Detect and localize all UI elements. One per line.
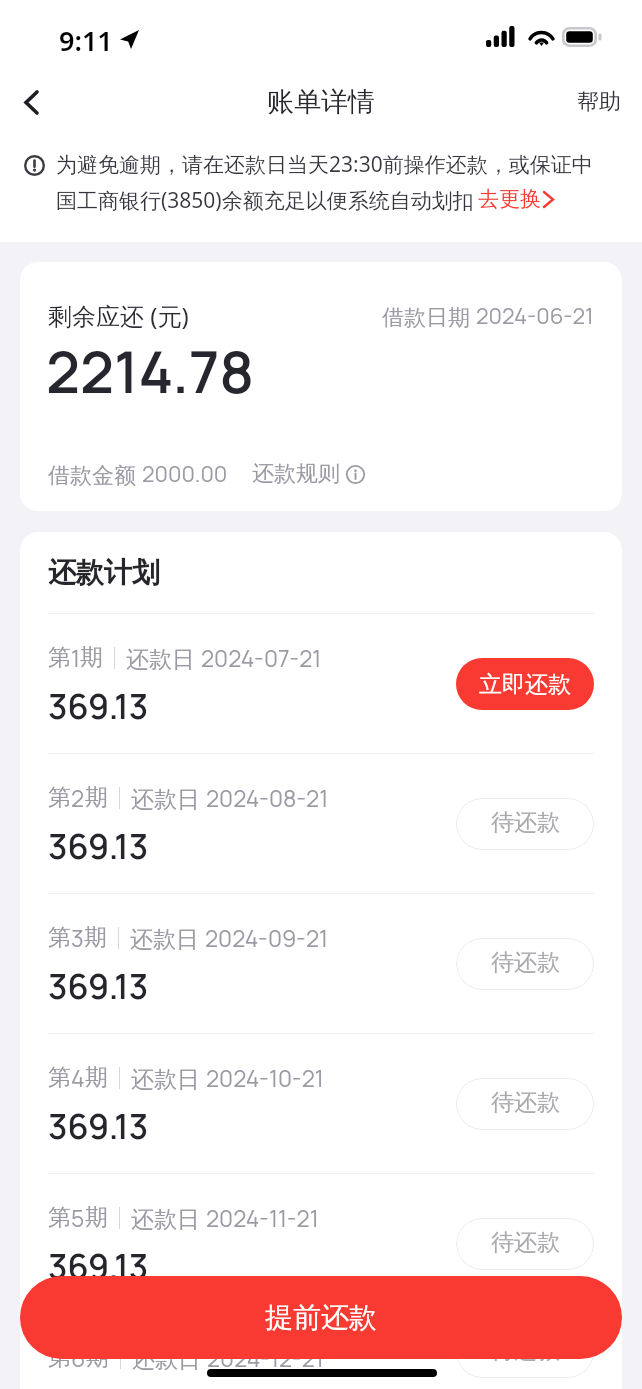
staticText: 369.13: [48, 823, 149, 869]
staticText: 立即还款: [479, 670, 571, 699]
staticText: 1: [71, 642, 80, 673]
staticText: 待还款: [491, 808, 560, 837]
staticText: 2024-12-21: [207, 1342, 324, 1373]
staticText: 待还款: [491, 948, 560, 977]
staticText: 期: [85, 783, 108, 812]
button[interactable]: 立即还款: [456, 658, 594, 710]
staticText: 期: [86, 1343, 109, 1372]
staticText: 待还款: [491, 1336, 560, 1365]
staticText: 还款日: [131, 782, 206, 813]
staticText: 2024-11-21: [206, 1202, 319, 1233]
staticText: 2024-06-21: [476, 301, 594, 331]
button[interactable]: 待还款: [456, 1078, 594, 1130]
staticText: 369.13: [48, 963, 149, 1009]
staticText: 去更换: [478, 186, 541, 212]
staticText: 还款日: [132, 1342, 207, 1373]
staticText: 6: [71, 1342, 86, 1373]
button[interactable]: 待还款: [456, 938, 594, 990]
button[interactable]: 待还款: [456, 798, 594, 850]
staticText: 369.13: [48, 1243, 149, 1289]
button[interactable]: 还款规则: [252, 460, 365, 488]
staticText: 第: [48, 1203, 71, 1232]
staticText: 5: [71, 1202, 85, 1233]
staticText: 2214.78: [46, 331, 255, 410]
staticText: 2000.00: [142, 459, 228, 489]
staticText: 为避免逾期，请在还款日当天23:30前操作还款，或保证中: [56, 150, 593, 179]
button[interactable]: 去更换: [478, 186, 553, 212]
staticText: 9:11: [59, 22, 113, 59]
staticText: 369.13: [48, 1103, 149, 1149]
staticText: 待还款: [491, 1228, 560, 1257]
staticText: 剩余应还 (元): [48, 299, 189, 332]
staticText: 第: [48, 1343, 71, 1372]
staticText: 国工商银行(3850)余额充足以便系统自动划扣: [56, 186, 474, 215]
staticText: 账单详情: [267, 85, 375, 119]
staticText: 3: [71, 922, 84, 953]
staticText: 2024-08-21: [206, 782, 329, 813]
staticText: 期: [80, 643, 103, 672]
button[interactable]: Back: [6, 77, 56, 127]
staticText: 2024-10-21: [206, 1062, 324, 1093]
button[interactable]: 提前还款: [20, 1276, 622, 1359]
staticText: 2: [71, 782, 85, 813]
button[interactable]: 待还款: [456, 1218, 594, 1270]
staticText: 还款规则: [252, 460, 340, 488]
staticText: 还款日: [126, 642, 201, 673]
staticText: 369.13: [48, 683, 149, 729]
staticText: 2024-09-21: [205, 922, 329, 953]
button[interactable]: 帮助: [577, 88, 621, 116]
staticText: 2024-07-21: [201, 642, 322, 673]
staticText: 第: [48, 923, 71, 952]
staticText: 第: [48, 643, 71, 672]
staticText: 期: [85, 1203, 108, 1232]
staticText: 还款日: [130, 922, 205, 953]
button[interactable]: 待还款: [456, 1326, 594, 1378]
staticText: 还款日: [131, 1062, 206, 1093]
staticText: 期: [85, 1063, 108, 1092]
staticText: 帮助: [577, 88, 621, 116]
staticText: 4: [71, 1062, 85, 1093]
staticText: 借款金额: [48, 459, 142, 489]
staticText: 提前还款: [265, 1300, 377, 1335]
staticText: 第: [48, 1063, 71, 1092]
staticText: 待还款: [491, 1088, 560, 1117]
staticText: 第: [48, 783, 71, 812]
staticText: 还款计划: [48, 555, 160, 590]
staticText: 期: [84, 923, 107, 952]
staticText: 还款日: [131, 1202, 206, 1233]
staticText: 借款日期: [382, 301, 476, 331]
